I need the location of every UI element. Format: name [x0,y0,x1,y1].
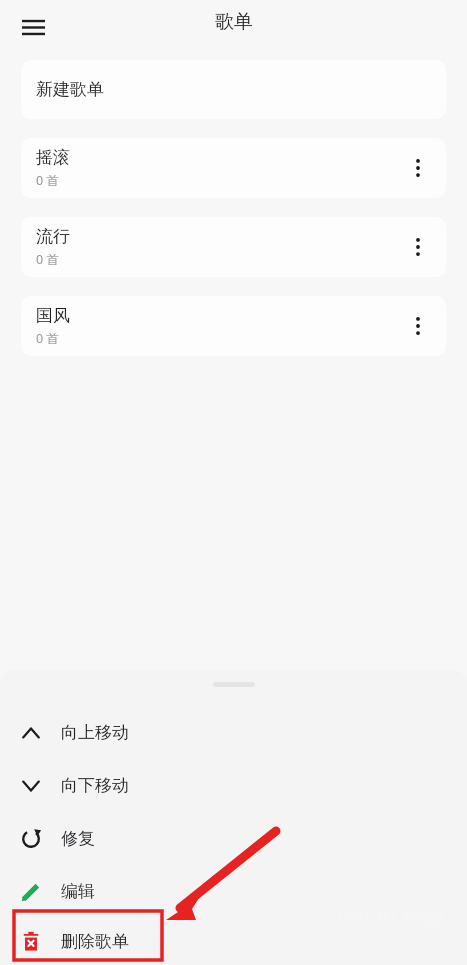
button[interactable]: More options [404,233,432,261]
staticText: 0 首 [36,330,59,347]
button[interactable]: 新建歌单 [21,60,446,119]
other: Delete playlist [18,929,44,955]
button[interactable]: 国风 [21,296,446,356]
staticText: 向上移动 [61,722,129,743]
staticText: 删除歌单 [61,931,129,952]
other: Edit [18,879,44,905]
staticText: 歌单 [215,10,253,34]
other: Move up [18,720,44,746]
button[interactable]: Delete playlist [0,918,467,965]
other: Repair [18,826,44,852]
staticText: 流行 [36,226,70,247]
staticText: 向下移动 [61,775,129,796]
button[interactable]: 流行 [21,217,446,277]
other: Move down [18,773,44,799]
staticText: 修复 [61,828,95,849]
button[interactable]: Move down [0,759,467,812]
button[interactable]: Edit [0,865,467,918]
button[interactable]: Repair [0,812,467,865]
button[interactable]: Menu [12,6,54,48]
staticText: 新建歌单 [36,79,104,100]
button[interactable]: More options [404,312,432,340]
button[interactable]: Move up [0,706,467,759]
staticText: 编辑 [61,881,95,902]
button[interactable]: More options [404,154,432,182]
staticText: 摇滚 [36,147,70,168]
staticText: 国风 [36,305,70,326]
button[interactable]: 摇滚 [21,138,446,198]
staticText: 0 首 [36,172,59,189]
staticText: 0 首 [36,251,59,268]
